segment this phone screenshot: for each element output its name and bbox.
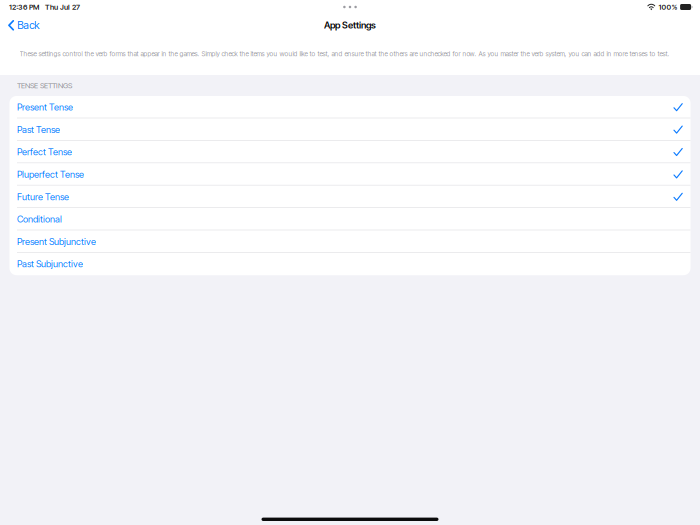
button[interactable]: Pluperfect Tense xyxy=(9,163,690,186)
button[interactable]: Perfect Tense xyxy=(9,141,690,163)
staticText: 12:36 PM xyxy=(9,3,39,11)
staticText: Past Subjunctive xyxy=(17,258,83,269)
button[interactable]: Back xyxy=(0,14,47,36)
button[interactable]: Conditional xyxy=(9,208,690,230)
staticText: Present Subjunctive xyxy=(17,236,96,247)
button[interactable]: Present Tense xyxy=(9,96,690,118)
staticText: Pluperfect Tense xyxy=(17,169,84,180)
staticText: Thu Jul 27 xyxy=(45,3,80,11)
staticText: Conditional xyxy=(17,214,62,225)
button[interactable]: Past Tense xyxy=(9,118,690,141)
staticText: Past Tense xyxy=(17,124,60,135)
staticText: Present Tense xyxy=(17,102,73,113)
button[interactable]: Multitasking Controls xyxy=(333,0,367,14)
staticText: Future Tense xyxy=(17,191,69,202)
button[interactable]: Past Subjunctive xyxy=(9,253,690,275)
staticText: Perfect Tense xyxy=(17,146,72,157)
staticText: These settings control the verb forms th… xyxy=(19,50,669,58)
button[interactable]: Present Subjunctive xyxy=(9,230,690,253)
staticText: TENSE SETTINGS xyxy=(17,81,72,90)
staticText: App Settings xyxy=(324,19,376,31)
staticText: Back xyxy=(17,18,39,31)
staticText: 100% xyxy=(658,3,677,11)
button[interactable]: Future Tense xyxy=(9,186,690,208)
